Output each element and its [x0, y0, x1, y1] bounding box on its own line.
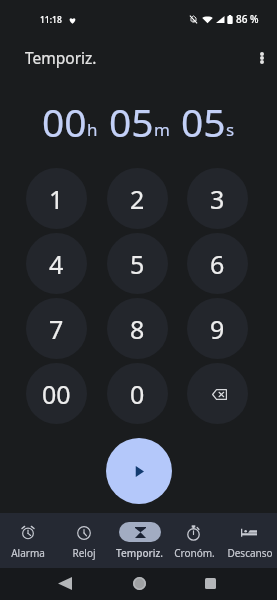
button[interactable]: Home — [126, 568, 152, 600]
other: Delete — [212, 389, 227, 400]
staticText: 8 — [130, 312, 145, 346]
button[interactable]: 8 — [107, 298, 168, 359]
button[interactable]: Delete — [187, 363, 248, 424]
staticText: 9 — [210, 312, 225, 346]
staticText: 11:18 — [40, 14, 62, 26]
button[interactable]: Reloj — [56, 513, 112, 568]
button[interactable]: Recents — [197, 568, 223, 600]
staticText: 05 — [109, 95, 154, 141]
staticText: 3 — [210, 182, 225, 216]
button[interactable]: 3 — [187, 168, 248, 229]
button[interactable]: Cronóm. — [167, 513, 222, 568]
staticText: 05 — [181, 95, 226, 141]
staticText: 00 — [42, 95, 87, 141]
button[interactable]: 9 — [187, 298, 248, 359]
staticText: 00 — [42, 377, 71, 411]
button[interactable]: Temporiz. — [112, 513, 167, 568]
staticText: m — [154, 118, 170, 141]
button[interactable]: 0 — [107, 363, 168, 424]
staticText: h — [87, 118, 98, 141]
button[interactable]: 2 — [107, 168, 168, 229]
staticText: Descanso — [227, 546, 273, 560]
staticText: 86 % — [236, 12, 259, 26]
button[interactable]: Back — [51, 568, 78, 600]
staticText: 0 — [130, 377, 145, 411]
button[interactable]: 6 — [187, 233, 248, 294]
button[interactable]: Alarma — [0, 513, 56, 568]
button[interactable]: More options — [248, 44, 276, 72]
staticText: Alarma — [11, 546, 45, 560]
button[interactable]: Descanso — [222, 513, 277, 568]
staticText: Temporiz. — [116, 546, 163, 560]
staticText: s — [226, 118, 235, 141]
staticText: Temporiz. — [25, 47, 97, 68]
staticText: 5 — [130, 247, 145, 281]
staticText: 1 — [49, 182, 64, 216]
button[interactable]: 1 — [26, 168, 87, 229]
button[interactable]: 7 — [26, 298, 87, 359]
staticText: 4 — [49, 247, 64, 281]
staticText: 6 — [210, 247, 225, 281]
staticText: Cronóm. — [174, 546, 215, 560]
button[interactable]: 4 — [26, 233, 87, 294]
staticText: 2 — [130, 182, 145, 216]
button[interactable]: 5 — [107, 233, 168, 294]
staticText: Reloj — [72, 546, 96, 560]
staticText: 7 — [49, 312, 64, 346]
button[interactable]: Start timer — [106, 438, 172, 504]
button[interactable]: 00 — [26, 363, 87, 424]
